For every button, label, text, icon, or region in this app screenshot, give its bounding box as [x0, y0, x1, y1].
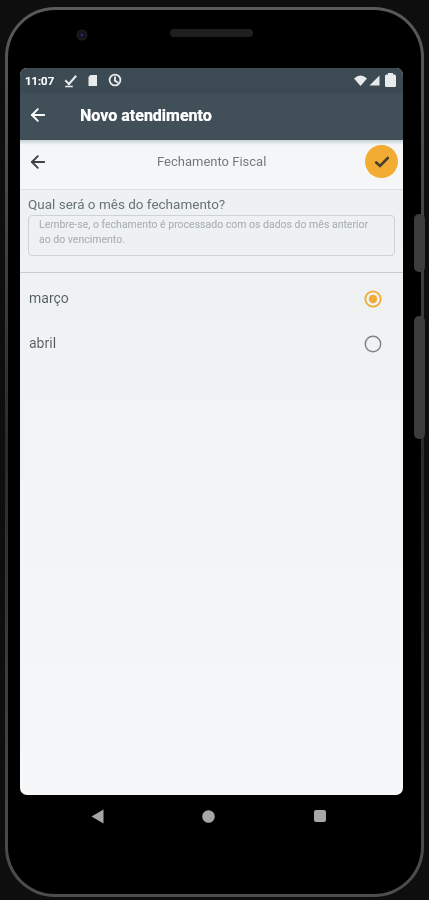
staticText: Qual será o mês do fechamento? — [28, 196, 226, 212]
staticText: março — [29, 290, 69, 306]
staticText: Lembre-se, o fechamento é processado com… — [39, 218, 369, 245]
staticText: Novo atendimento — [80, 106, 212, 125]
staticText: abril — [29, 335, 57, 351]
staticText: 11:07 — [25, 74, 55, 87]
staticText: Fechamento Fiscal — [157, 154, 267, 169]
